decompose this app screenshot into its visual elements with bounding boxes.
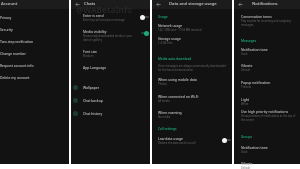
button[interactable]: When using mobile data xyxy=(152,77,232,86)
other: Back xyxy=(75,2,80,7)
button[interactable]: Use high priority notifications xyxy=(234,109,300,122)
staticText: Wallpaper xyxy=(83,85,100,90)
button[interactable]: When roaming xyxy=(152,110,232,119)
button[interactable]: Notification tone xyxy=(234,145,300,154)
staticText: @WABetaInfo xyxy=(76,4,133,15)
staticText: Low data usage xyxy=(158,136,183,141)
staticText: Enter is send xyxy=(83,13,104,18)
button[interactable]: Vibrate xyxy=(234,161,300,169)
button[interactable]: Enter is send xyxy=(71,13,150,22)
staticText: Popup notification xyxy=(241,80,271,85)
staticText: When connected on Wi-Fi xyxy=(158,94,199,99)
staticText: Two-step verification xyxy=(0,39,34,44)
staticText: Change number xyxy=(0,51,26,56)
button[interactable]: Wallpaper xyxy=(71,81,150,93)
staticText: Data and storage usage xyxy=(169,1,217,7)
button[interactable]: Chat history xyxy=(71,107,150,119)
staticText: Notification tone xyxy=(241,47,268,52)
button[interactable]: Back xyxy=(234,0,300,9)
button[interactable]: Storage usage xyxy=(152,36,232,45)
staticText: Vibrate xyxy=(241,63,253,68)
staticText: 1.4 GB Files xyxy=(158,41,173,45)
button[interactable]: Groups xyxy=(241,135,253,139)
button[interactable]: Security xyxy=(0,23,69,35)
button[interactable]: Vibrate xyxy=(234,63,300,72)
button[interactable]: Back xyxy=(152,0,232,9)
staticText: White xyxy=(241,102,249,106)
staticText: Show newly downloaded media in your devi… xyxy=(83,34,140,42)
staticText: Photos xyxy=(158,82,167,86)
staticText: Default xyxy=(241,166,251,169)
staticText: Groups xyxy=(241,135,253,139)
staticText: Request account info xyxy=(0,63,34,68)
button[interactable]: Delete my account xyxy=(0,71,69,83)
staticText: Light xyxy=(241,97,250,102)
staticText: Account xyxy=(1,1,18,7)
staticText: Media visibility xyxy=(83,29,107,34)
button[interactable]: Back xyxy=(71,0,150,9)
button[interactable]: Change number xyxy=(0,47,69,59)
staticText: Preview xyxy=(241,85,251,89)
staticText: Delete my account xyxy=(0,75,30,80)
staticText: All media xyxy=(158,99,170,103)
other: Back xyxy=(156,2,161,7)
staticText: When roaming xyxy=(158,110,182,115)
staticText: Dash xyxy=(241,150,248,154)
button[interactable]: Toggle on xyxy=(140,30,149,36)
staticText: Usage xyxy=(158,15,168,19)
staticText: Show previews of notifications at the to… xyxy=(241,114,299,122)
button[interactable]: When connected on Wi-Fi xyxy=(152,94,232,103)
staticText: Notifications xyxy=(252,1,278,7)
other: Back xyxy=(238,2,243,7)
staticText: Dash xyxy=(241,52,248,56)
button[interactable]: Light xyxy=(234,97,300,106)
button[interactable]: Toggle off xyxy=(140,14,149,20)
button[interactable]: Notification tone xyxy=(234,47,300,56)
button[interactable]: Media visibility xyxy=(71,29,150,42)
staticText: No media xyxy=(158,115,171,119)
button[interactable]: Popup notification xyxy=(234,80,300,89)
staticText: Network usage xyxy=(158,23,183,28)
button[interactable]: Account xyxy=(0,0,69,9)
staticText: Medium xyxy=(83,54,94,58)
staticText: Messages xyxy=(241,39,257,43)
button[interactable]: Call settings xyxy=(158,127,177,131)
button[interactable]: Font size xyxy=(71,49,150,58)
staticText: Chat backup xyxy=(83,98,103,103)
staticText: Font size xyxy=(83,49,98,54)
button[interactable]: Media auto-download xyxy=(158,57,192,61)
button[interactable]: Request account info xyxy=(0,59,69,71)
button[interactable]: Privacy xyxy=(0,11,69,23)
button[interactable]: Messages xyxy=(241,39,257,43)
staticText: Reduce the data used in a call xyxy=(158,141,196,145)
staticText: Default xyxy=(241,68,251,72)
staticText: Conversation tones xyxy=(241,14,272,19)
staticText: Storage usage xyxy=(158,36,181,41)
button[interactable]: Low data usage xyxy=(152,136,232,145)
button[interactable]: Toggle off xyxy=(222,137,231,143)
staticText: Call settings xyxy=(158,127,177,131)
staticText: Notification tone xyxy=(241,145,268,150)
staticText: App Language xyxy=(83,65,107,70)
button[interactable]: App Language xyxy=(71,65,150,70)
staticText: 142.1 MB sent • 119.8 MB received xyxy=(158,28,202,32)
staticText: When using mobile data xyxy=(158,77,197,82)
button[interactable]: Two-step verification xyxy=(0,35,69,47)
staticText: Media auto-download xyxy=(158,57,192,61)
button[interactable]: Chat backup xyxy=(71,94,150,106)
staticText: Security xyxy=(0,27,13,32)
staticText: Voice messages are always automatically … xyxy=(158,64,228,72)
staticText: Enter key will send your message xyxy=(83,18,125,22)
button[interactable]: Usage xyxy=(158,15,168,19)
staticText: Privacy xyxy=(0,15,12,20)
staticText: Vibrate xyxy=(241,161,253,166)
staticText: Chats xyxy=(84,1,96,7)
button[interactable]: Network usage xyxy=(152,23,232,32)
staticText: Use high priority notifications xyxy=(241,109,289,114)
button[interactable]: Conversation tones xyxy=(234,14,300,27)
staticText: Chat history xyxy=(83,111,103,116)
staticText: Play sounds for incoming and outgoing me… xyxy=(241,19,299,27)
